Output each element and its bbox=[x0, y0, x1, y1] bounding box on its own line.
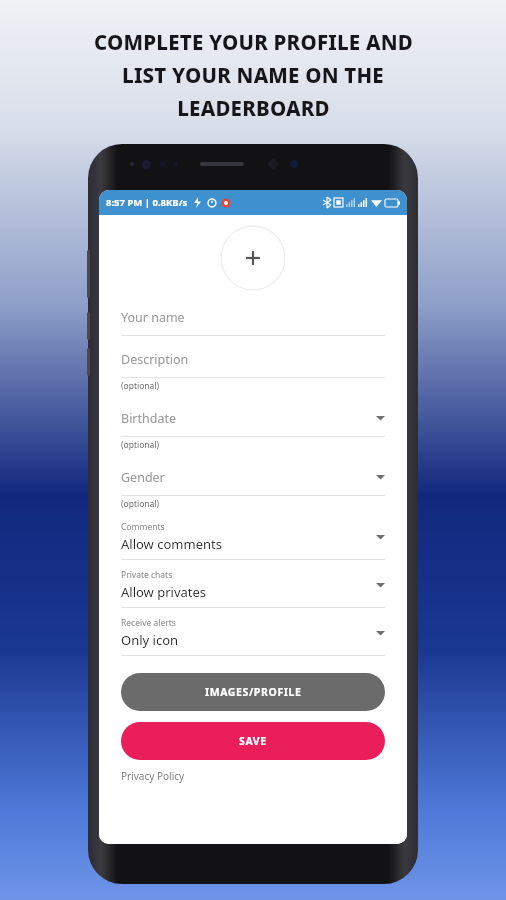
staticText: (optional) bbox=[121, 380, 160, 392]
staticText: SAVE bbox=[239, 734, 267, 748]
staticText: Your name bbox=[121, 309, 185, 326]
staticText: Gender bbox=[121, 469, 376, 486]
staticText: Description bbox=[121, 351, 189, 368]
staticText: Privacy Policy bbox=[121, 769, 185, 783]
button[interactable]: Your name bbox=[121, 305, 385, 336]
button[interactable]: Comments bbox=[121, 521, 385, 560]
staticText: Receive alerts bbox=[121, 617, 176, 629]
staticText: Private chats bbox=[121, 569, 173, 581]
staticText: Allow privates bbox=[121, 583, 207, 601]
button[interactable]: IMAGES/PROFILE bbox=[121, 673, 385, 711]
staticText: Allow comments bbox=[121, 535, 222, 553]
staticText: COMPLETE YOUR PROFILE AND bbox=[94, 28, 413, 56]
staticText: (optional) bbox=[121, 439, 160, 451]
staticText: IMAGES/PROFILE bbox=[205, 685, 302, 699]
button[interactable]: Description bbox=[121, 347, 385, 378]
button[interactable]: Gender bbox=[121, 465, 385, 496]
staticText: Birthdate bbox=[121, 410, 376, 427]
staticText: Only icon bbox=[121, 631, 179, 649]
button[interactable]: Private chats bbox=[121, 569, 385, 608]
staticText: 8:57 PM | 0.8KB/s bbox=[106, 196, 188, 209]
button[interactable]: Add profile photo bbox=[220, 225, 286, 291]
staticText: LEADERBOARD bbox=[177, 94, 330, 122]
button[interactable]: Birthdate bbox=[121, 406, 385, 437]
staticText: (optional) bbox=[121, 498, 160, 510]
staticText: LIST YOUR NAME ON THE bbox=[122, 61, 384, 89]
staticText: Comments bbox=[121, 521, 165, 533]
button[interactable]: Receive alerts bbox=[121, 617, 385, 656]
button[interactable]: SAVE bbox=[121, 722, 385, 760]
button[interactable]: Privacy Policy bbox=[121, 769, 185, 783]
